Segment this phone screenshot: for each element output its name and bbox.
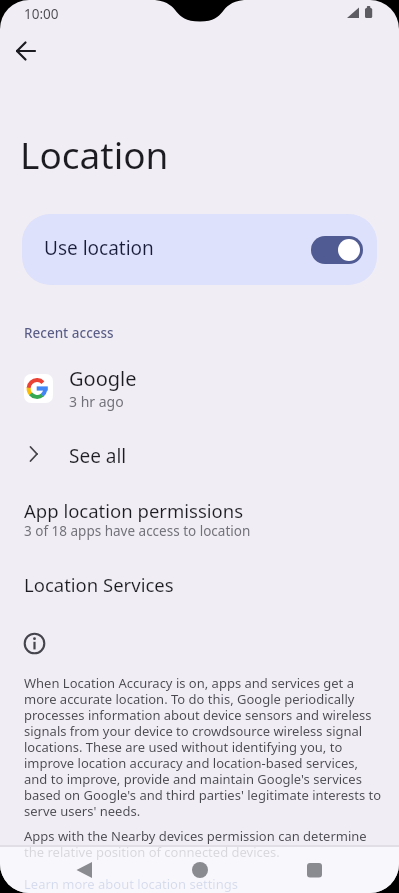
button[interactable]: See all (0, 432, 399, 476)
staticText: App location permissions (24, 498, 244, 523)
button[interactable]: App location permissions (0, 494, 399, 548)
button[interactable]: Use location (22, 214, 377, 285)
staticText: the relative position of connected devic… (24, 843, 280, 861)
staticText: based on Google's and third parties' leg… (24, 786, 382, 804)
staticText: improve location accuracy and location-b… (24, 754, 359, 772)
staticText: When Location Accuracy is on, apps and s… (24, 674, 354, 692)
staticText: See all (69, 443, 127, 469)
staticText: Apps with the Nearby devices permission … (24, 827, 367, 845)
staticText: locations. These are used without identi… (24, 738, 343, 756)
staticText: more accurate location. To do this, Goog… (24, 690, 355, 708)
staticText: Google (69, 365, 137, 392)
button[interactable] (6, 33, 42, 69)
staticText: Use location (44, 235, 154, 261)
staticText: Learn more about location settings (24, 875, 238, 893)
staticText: Recent access (24, 324, 114, 342)
staticText: serve users' needs. (24, 802, 141, 820)
staticText: Location (20, 129, 169, 179)
staticText: 3 hr ago (69, 392, 124, 411)
staticText: and to improve, provide and maintain Goo… (24, 770, 362, 788)
button[interactable]: Location Services (0, 570, 399, 610)
button[interactable]: Google (0, 362, 399, 414)
staticText: signals from your device to crowdsource … (24, 722, 363, 740)
staticText: 3 of 18 apps have access to location (24, 522, 251, 540)
staticText: 10:00 (24, 5, 59, 23)
staticText: Location Services (24, 572, 174, 597)
staticText: processes information about device senso… (24, 706, 372, 724)
